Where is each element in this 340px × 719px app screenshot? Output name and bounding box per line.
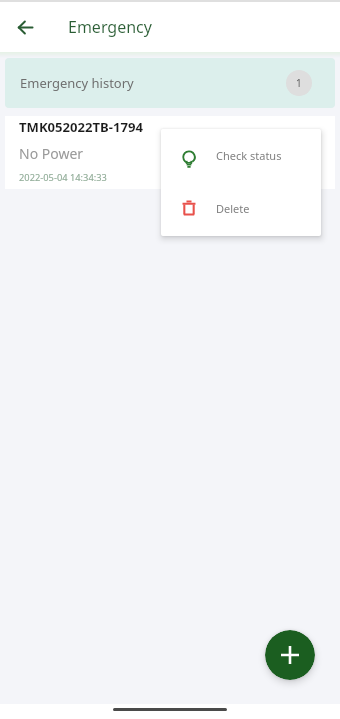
button[interactable]: Delete (161, 182, 321, 235)
staticText: Delete (216, 201, 250, 216)
button[interactable]: Emergency history (5, 58, 335, 108)
staticText: Emergency history (20, 74, 134, 92)
staticText: No Power (19, 144, 84, 163)
staticText: Emergency (68, 16, 152, 38)
button[interactable]: Back (0, 2, 50, 52)
staticText: TMK052022TB-1794 (19, 118, 143, 136)
staticText: Check status (216, 148, 282, 163)
staticText: 2022-05-04 14:34:33 (19, 171, 107, 184)
button[interactable]: Check status (161, 129, 321, 182)
button[interactable]: TMK052022TB-1794 (5, 116, 335, 189)
button[interactable]: Add (265, 630, 315, 680)
staticText: 1 (296, 76, 302, 90)
